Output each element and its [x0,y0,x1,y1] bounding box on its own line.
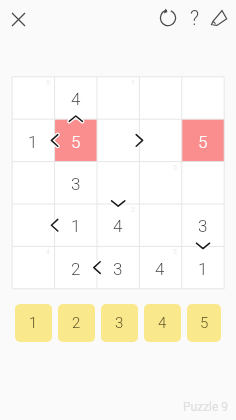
staticText: 1 [71,216,81,236]
button[interactable]: 5 [55,121,97,163]
staticText: 2 [71,259,81,279]
staticText: 5 [198,132,208,152]
staticText: Puzzle 9 [183,400,229,414]
staticText: 2 [131,206,135,214]
staticText: 5 [46,79,50,87]
button[interactable]: 1 [182,248,224,290]
button[interactable]: Help [181,3,209,31]
staticText: 5 [200,314,209,332]
staticText: 5 [71,132,81,152]
staticText: 4 [46,248,50,256]
staticText: 1 [131,79,135,87]
staticText: ? [190,6,200,29]
button[interactable]: 3 [182,205,224,247]
staticText: 2 [173,248,177,256]
staticText: 4 [71,89,81,109]
button[interactable]: 4 [139,248,181,290]
staticText: 1 [28,132,38,152]
button[interactable]: 2 [55,248,97,290]
staticText: 4 [158,314,167,332]
button[interactable]: 3 [101,304,138,342]
staticText: 1 [198,259,208,279]
button[interactable]: Pen [205,4,233,32]
button[interactable]: 2 [58,304,95,342]
button[interactable]: 5 [182,121,224,163]
button[interactable]: 4 [97,205,139,247]
button[interactable]: 1 [15,304,52,342]
button[interactable]: 4 [144,304,181,342]
staticText: 4 [155,259,165,279]
button[interactable]: 3 [55,163,97,205]
button[interactable]: 1 [12,121,54,163]
button[interactable]: 5 [187,304,221,342]
button[interactable]: 4 [55,78,97,120]
button[interactable]: 3 [97,248,139,290]
staticText: 3 [71,174,81,194]
staticText: 2 [72,314,81,332]
staticText: 3 [115,314,124,332]
button[interactable]: 1 [55,205,97,247]
button[interactable]: Restart [154,4,182,32]
button[interactable]: Close [4,5,32,33]
staticText: 4 [113,216,123,236]
staticText: 3 [113,259,123,279]
staticText: 1 [29,314,38,332]
staticText: 5 [173,164,177,172]
staticText: 3 [198,216,208,236]
